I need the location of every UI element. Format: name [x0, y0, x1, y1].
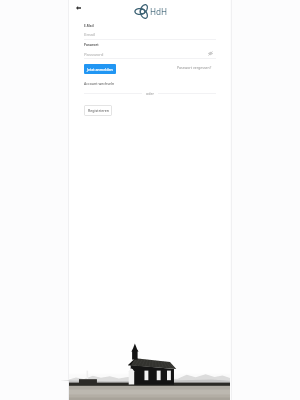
- button[interactable]: Registrieren: [84, 105, 112, 116]
- staticText: Registrieren: [88, 108, 109, 113]
- staticText: Account wechseln: [84, 81, 115, 86]
- staticText: Jetzt anmelden: [87, 67, 113, 72]
- button[interactable]: Account wechseln: [84, 81, 115, 86]
- button[interactable]: Back: [72, 2, 84, 14]
- button[interactable]: Show password: [205, 48, 215, 58]
- staticText: Password: [84, 51, 104, 57]
- staticText: HdH: [150, 6, 168, 17]
- button[interactable]: Passwort vergessen?: [177, 65, 212, 70]
- staticText: E-Mail: [84, 24, 94, 28]
- staticText: Passwort: [84, 43, 99, 47]
- staticText: oder: [146, 91, 154, 96]
- staticText: Passwort vergessen?: [177, 65, 212, 70]
- staticText: Email: [84, 31, 96, 37]
- button[interactable]: Jetzt anmelden: [84, 64, 116, 74]
